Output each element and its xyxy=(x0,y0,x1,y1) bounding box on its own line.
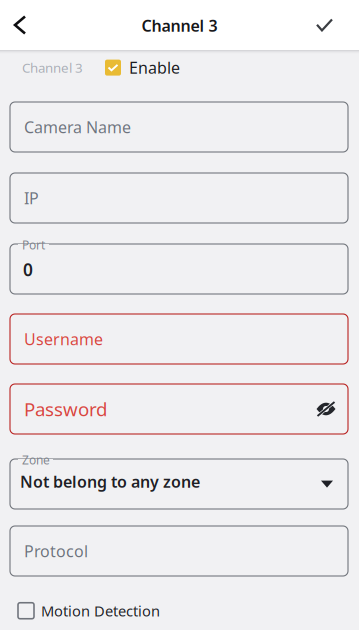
staticText: Motion Detection xyxy=(41,601,160,620)
button[interactable]: Camera Name xyxy=(10,102,348,152)
button[interactable]: Zone xyxy=(10,459,348,509)
button[interactable]: Enable xyxy=(105,57,180,78)
staticText: Channel 3 xyxy=(22,59,83,76)
button[interactable]: Save xyxy=(304,0,359,50)
staticText: Camera Name xyxy=(24,116,131,138)
staticText: Password xyxy=(24,397,107,421)
staticText: Zone xyxy=(22,452,50,468)
staticText: Enable xyxy=(129,57,180,78)
button[interactable]: Back xyxy=(0,0,40,50)
button[interactable]: Motion Detection xyxy=(18,601,160,620)
staticText: Protocol xyxy=(24,540,88,562)
button[interactable]: IP xyxy=(10,173,348,223)
staticText: IP xyxy=(24,187,39,209)
staticText: Username xyxy=(24,328,103,350)
staticText: 0 xyxy=(23,258,33,281)
button[interactable]: Username xyxy=(10,314,348,364)
staticText: Not belong to any zone xyxy=(20,471,200,492)
staticText: Channel 3 xyxy=(141,15,217,36)
button[interactable]: Password xyxy=(10,384,348,434)
button[interactable]: Protocol xyxy=(10,526,348,576)
button[interactable]: Port xyxy=(10,244,348,294)
staticText: Port xyxy=(22,237,45,253)
